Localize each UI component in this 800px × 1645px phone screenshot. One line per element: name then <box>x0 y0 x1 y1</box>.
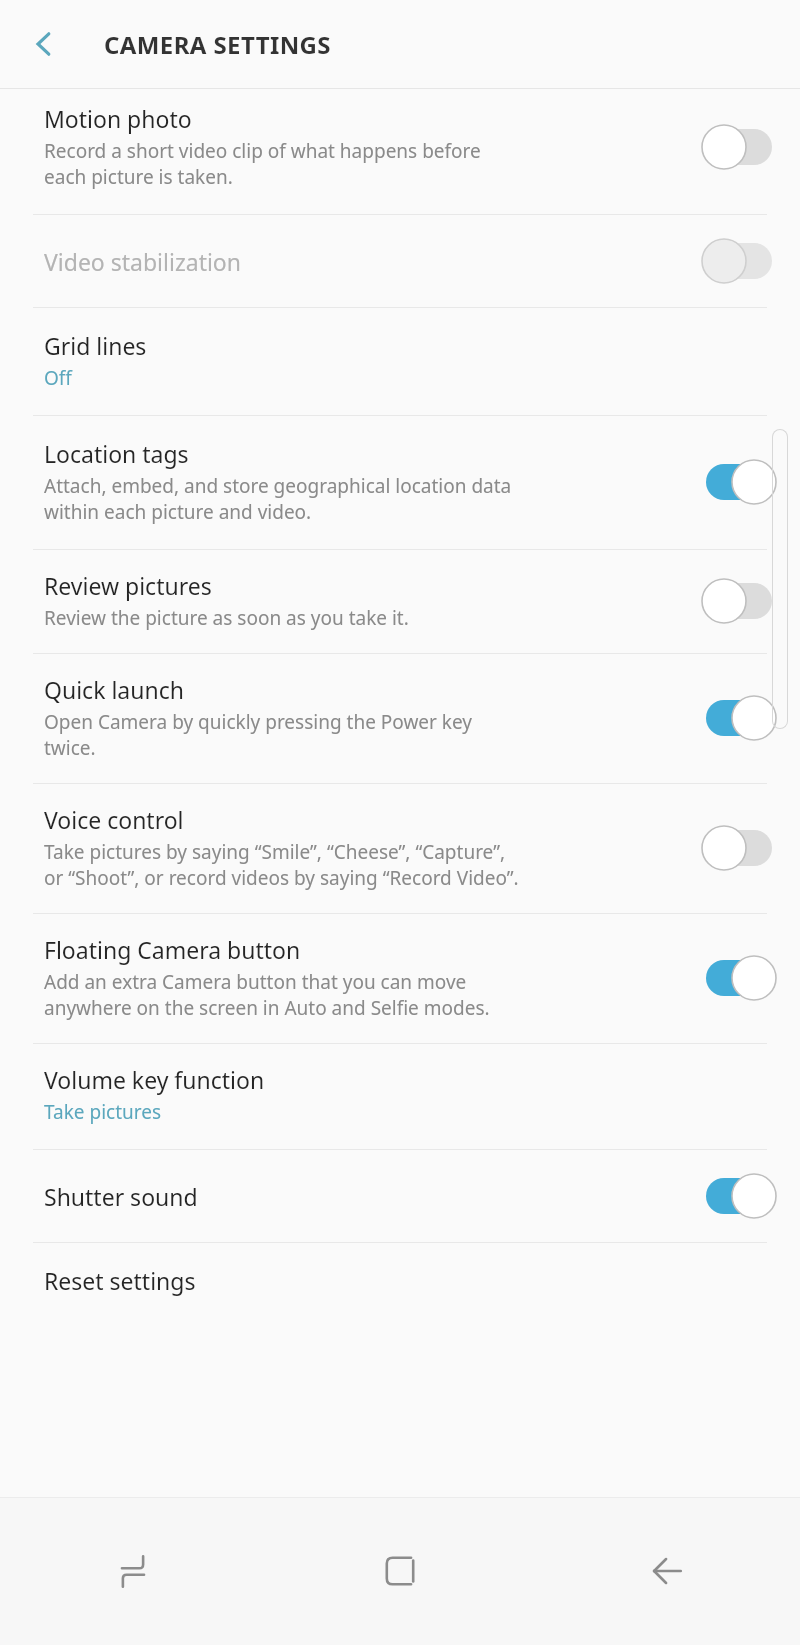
button[interactable]: Shutter sound <box>0 1150 800 1242</box>
staticText: Location tags <box>44 438 189 469</box>
staticText: Open Camera by quickly pressing the Powe… <box>44 709 473 761</box>
staticText: Review the picture as soon as you take i… <box>44 605 409 631</box>
staticText: Add an extra Camera button that you can … <box>44 969 490 1021</box>
staticText: Volume key function <box>44 1064 265 1095</box>
staticText: Floating Camera button <box>44 934 301 965</box>
button[interactable]: Motion photo <box>0 89 800 214</box>
staticText: CAMERA SETTINGS <box>104 28 331 61</box>
button[interactable]: Quick launch <box>0 654 800 783</box>
button[interactable]: Floating Camera button <box>0 914 800 1043</box>
staticText: Grid lines <box>44 330 147 361</box>
button[interactable]: Reset settings <box>0 1243 800 1318</box>
button[interactable]: Back <box>533 1497 800 1645</box>
button[interactable]: Review pictures <box>0 550 800 653</box>
button[interactable]: Home <box>266 1497 533 1645</box>
staticText: Voice control <box>44 804 184 835</box>
staticText: Off <box>44 365 72 391</box>
staticText: Motion photo <box>44 103 192 134</box>
staticText: Take pictures by saying “Smile”, “Cheese… <box>44 839 519 891</box>
button[interactable]: Video stabilization <box>0 215 800 307</box>
staticText: Quick launch <box>44 674 184 705</box>
button[interactable]: Grid lines <box>0 308 800 415</box>
button[interactable]: Back <box>20 20 68 68</box>
staticText: Attach, embed, and store geographical lo… <box>44 473 512 525</box>
staticText: Shutter sound <box>44 1181 198 1212</box>
staticText: Review pictures <box>44 570 212 601</box>
button[interactable]: Location tags <box>0 416 800 549</box>
button[interactable]: Volume key function <box>0 1044 800 1149</box>
button[interactable]: Voice control <box>0 784 800 913</box>
button[interactable]: Recents <box>0 1497 266 1645</box>
staticText: Video stabilization <box>44 246 241 277</box>
staticText: Take pictures <box>44 1099 162 1125</box>
staticText: Record a short video clip of what happen… <box>44 138 481 190</box>
staticText: Reset settings <box>44 1265 196 1296</box>
